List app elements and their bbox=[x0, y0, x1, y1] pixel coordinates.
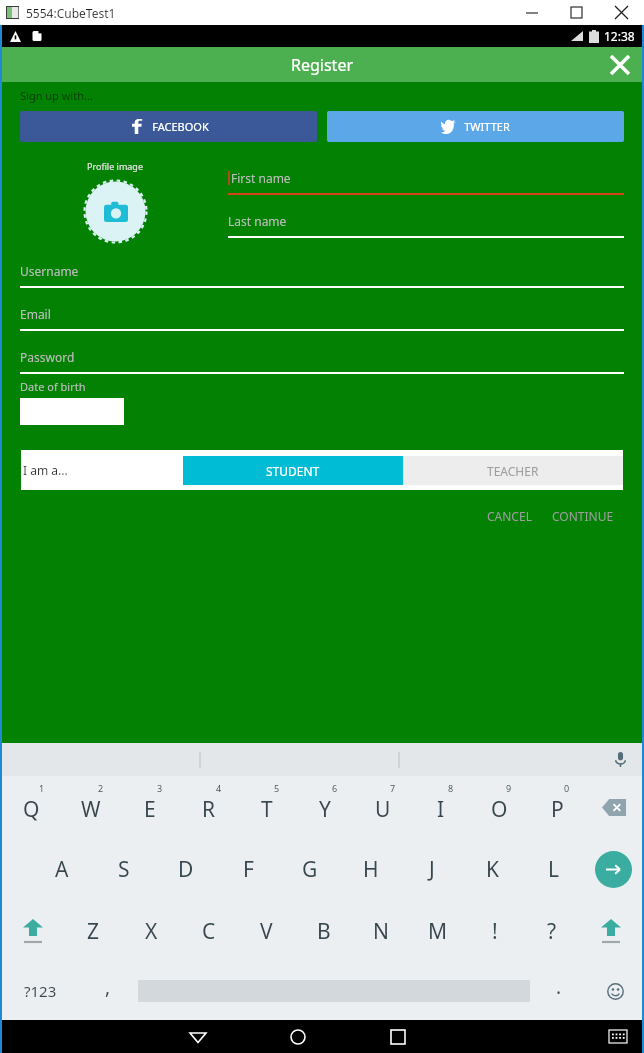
staticText: E bbox=[144, 795, 156, 824]
staticText: C bbox=[202, 917, 216, 946]
button[interactable]: N bbox=[352, 900, 409, 962]
button[interactable]: Keyboard layout bbox=[594, 1020, 642, 1053]
button[interactable]: V bbox=[238, 900, 295, 962]
button[interactable]: ! bbox=[466, 900, 523, 962]
staticText: Profile image bbox=[87, 160, 143, 172]
staticText: L bbox=[548, 855, 560, 884]
button[interactable]: C bbox=[180, 900, 238, 962]
button[interactable]: 8 bbox=[412, 776, 470, 838]
staticText: V bbox=[260, 917, 273, 946]
button[interactable]: J bbox=[401, 838, 462, 900]
button[interactable]: TEACHER bbox=[403, 456, 623, 485]
button[interactable]: 0 bbox=[528, 776, 586, 838]
staticText: 5554:CubeTest1 bbox=[26, 5, 116, 21]
staticText: S bbox=[118, 855, 130, 884]
button[interactable]: 2 bbox=[61, 776, 120, 838]
button[interactable]: Minimize bbox=[510, 0, 554, 25]
button[interactable]: 6 bbox=[296, 776, 354, 838]
button[interactable]: Z bbox=[64, 900, 122, 962]
button[interactable]: Close window bbox=[598, 0, 644, 25]
button[interactable]: CANCEL bbox=[477, 502, 542, 530]
staticText: D bbox=[178, 855, 194, 884]
button[interactable]: 9 bbox=[470, 776, 528, 838]
staticText: U bbox=[375, 795, 391, 824]
button[interactable]: S bbox=[93, 838, 155, 900]
staticText: I bbox=[437, 795, 445, 824]
button[interactable]: Shift bbox=[2, 900, 64, 962]
staticText: Y bbox=[319, 795, 331, 824]
button[interactable]: TWITTER bbox=[327, 111, 624, 142]
staticText: Sign up with... bbox=[20, 88, 93, 103]
button[interactable]: 3 bbox=[120, 776, 179, 838]
staticText: 6 bbox=[332, 782, 338, 794]
staticText: H bbox=[363, 855, 379, 884]
button[interactable]: STUDENT bbox=[183, 456, 403, 485]
button[interactable]: 4 bbox=[179, 776, 238, 838]
staticText: T bbox=[261, 795, 273, 824]
staticText: P bbox=[551, 795, 564, 824]
staticText: Z bbox=[87, 917, 100, 946]
button[interactable]: ? bbox=[523, 900, 580, 962]
staticText: Username bbox=[20, 263, 79, 279]
button[interactable]: B bbox=[295, 900, 352, 962]
staticText: 12:38 bbox=[604, 28, 635, 44]
staticText: Email bbox=[20, 306, 51, 322]
button[interactable]: ?123 bbox=[2, 962, 78, 1020]
button[interactable]: Pick profile image bbox=[84, 180, 147, 243]
button[interactable]: Enter bbox=[584, 838, 642, 900]
staticText: . bbox=[556, 974, 562, 1000]
button[interactable]: , bbox=[78, 962, 138, 1020]
button[interactable]: 1 bbox=[2, 776, 61, 838]
staticText: STUDENT bbox=[266, 463, 320, 479]
staticText: 3 bbox=[157, 782, 163, 794]
staticText: First name bbox=[231, 170, 291, 186]
staticText: 9 bbox=[506, 782, 512, 794]
staticText: 0 bbox=[564, 782, 570, 794]
staticText: Date of birth bbox=[20, 379, 86, 394]
button[interactable]: FACEBOOK bbox=[20, 111, 317, 142]
staticText: ?123 bbox=[24, 981, 57, 1001]
staticText: 5 bbox=[274, 782, 280, 794]
staticText: G bbox=[302, 855, 318, 884]
button[interactable]: X bbox=[122, 900, 180, 962]
button[interactable]: Emoji bbox=[588, 962, 642, 1020]
button[interactable]: K bbox=[462, 838, 523, 900]
button[interactable]: Home bbox=[248, 1020, 348, 1053]
button[interactable]: D bbox=[155, 838, 217, 900]
button[interactable]: A bbox=[31, 838, 93, 900]
button[interactable]: M bbox=[409, 900, 466, 962]
staticText: I am a... bbox=[23, 462, 68, 478]
button[interactable]: . bbox=[530, 962, 588, 1020]
button[interactable]: Back bbox=[148, 1020, 248, 1053]
button[interactable]: Close bbox=[598, 47, 642, 82]
staticText: W bbox=[81, 795, 101, 824]
button[interactable]: H bbox=[340, 838, 401, 900]
button[interactable]: L bbox=[523, 838, 584, 900]
button[interactable]: CONTINUE bbox=[542, 502, 624, 530]
button[interactable]: F bbox=[217, 838, 279, 900]
staticText: R bbox=[202, 795, 216, 824]
staticText: A bbox=[55, 855, 69, 884]
staticText: N bbox=[373, 917, 389, 946]
staticText: ! bbox=[492, 917, 498, 946]
staticText: F bbox=[243, 855, 254, 884]
button[interactable]: G bbox=[279, 838, 340, 900]
button[interactable]: 7 bbox=[354, 776, 412, 838]
staticText: FACEBOOK bbox=[152, 119, 209, 134]
staticText: CONTINUE bbox=[552, 508, 614, 524]
button[interactable]: Shift bbox=[580, 900, 642, 962]
button[interactable]: Voice input bbox=[598, 743, 642, 776]
staticText: 4 bbox=[216, 782, 222, 794]
staticText: K bbox=[486, 855, 499, 884]
button[interactable]: Recents bbox=[348, 1020, 448, 1053]
button[interactable]: 5 bbox=[238, 776, 296, 838]
button[interactable]: Maximize bbox=[554, 0, 598, 25]
staticText: 7 bbox=[390, 782, 396, 794]
button[interactable]: Backspace bbox=[586, 776, 642, 838]
staticText: 2 bbox=[98, 782, 104, 794]
